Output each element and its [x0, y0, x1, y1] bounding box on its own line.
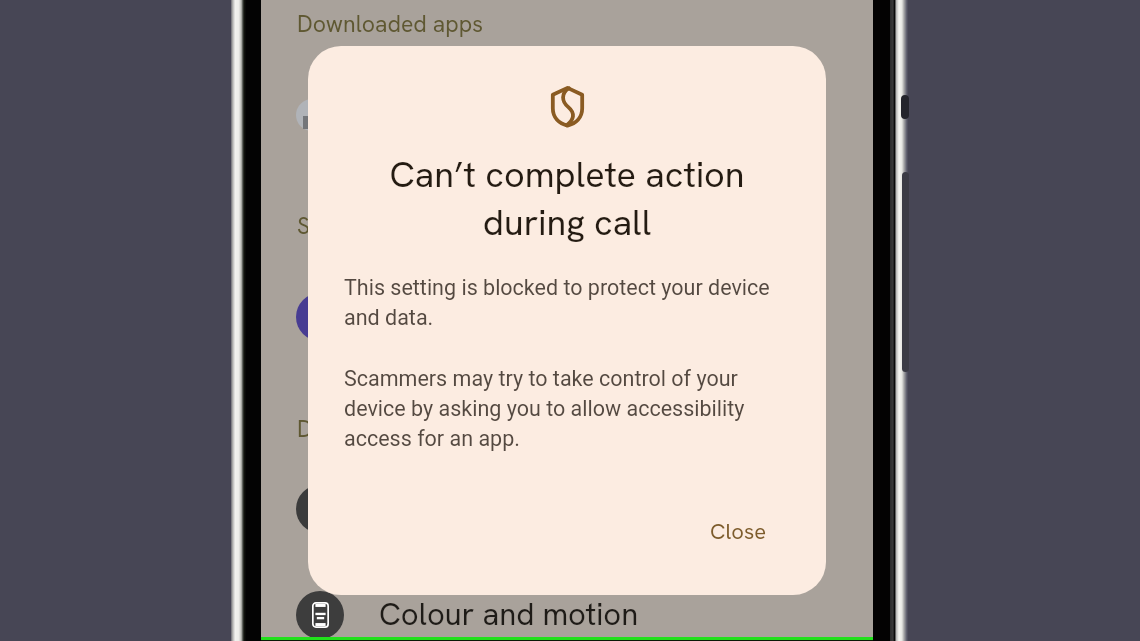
staticText: This setting is blocked to protect your … — [344, 275, 790, 330]
button[interactable]: Colour and motion — [261, 591, 873, 639]
staticText: Device — [297, 414, 367, 444]
staticText: Can’t complete action during call — [338, 151, 796, 246]
other: Power button — [901, 95, 909, 119]
staticText: Downloaded apps — [297, 9, 484, 39]
staticText: System — [297, 211, 372, 241]
staticText: Scammers may try to take control of your… — [344, 366, 790, 451]
other: Volume button — [902, 172, 909, 372]
staticText: Close — [710, 517, 767, 546]
button[interactable]: Close — [698, 509, 779, 554]
staticText: Colour and motion — [379, 594, 639, 634]
